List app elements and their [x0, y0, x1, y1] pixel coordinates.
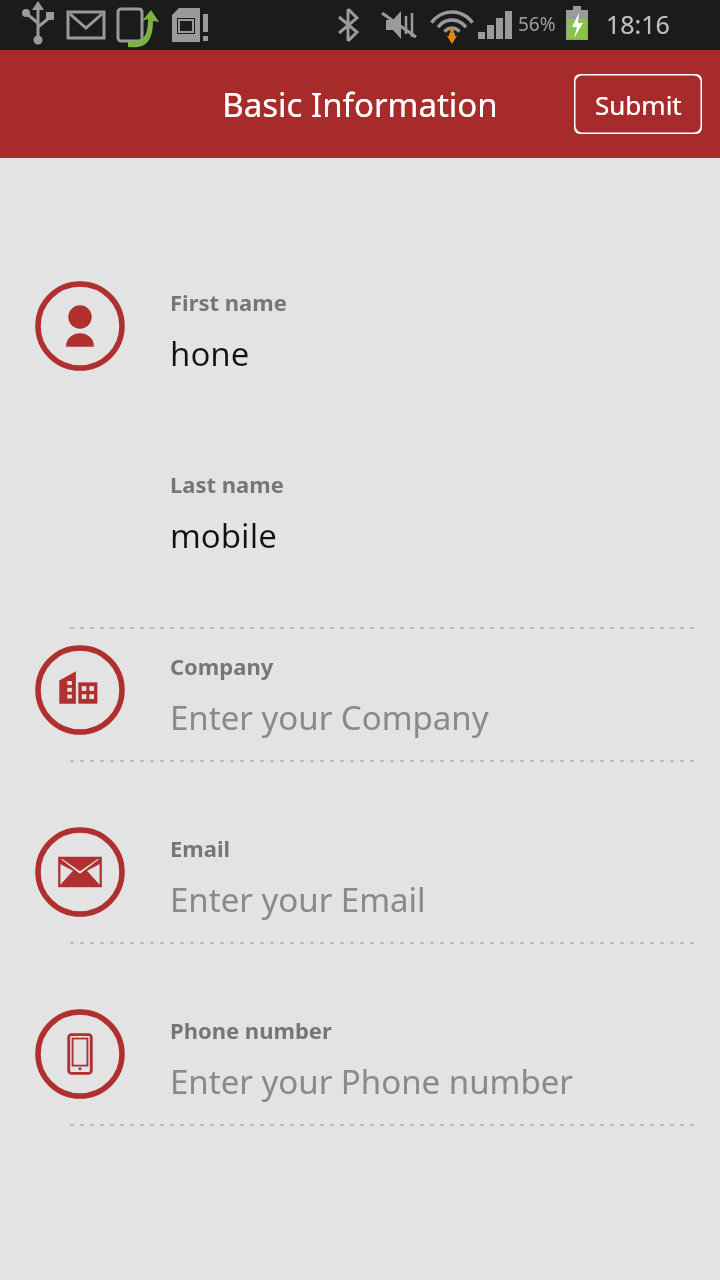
other: Email	[35, 827, 125, 917]
staticText: Basic Information	[222, 82, 498, 127]
staticText: Enter your Phone number	[170, 1059, 573, 1104]
button[interactable]: Phone number	[0, 991, 720, 1173]
staticText: Submit	[595, 87, 682, 122]
other: Phone number	[35, 1009, 125, 1099]
staticText: Enter your Company	[170, 695, 489, 740]
staticText: Email	[170, 833, 231, 863]
button[interactable]: Company	[0, 627, 720, 809]
button[interactable]: Submit	[574, 74, 702, 134]
staticText: Enter your Email	[170, 877, 426, 922]
staticText: Phone number	[170, 1015, 332, 1045]
staticText: Last name	[170, 469, 284, 499]
staticText: 56%	[518, 11, 556, 37]
staticText: Company	[170, 651, 274, 681]
other: Company	[35, 645, 125, 735]
staticText: First name	[170, 287, 287, 317]
staticText: hone	[170, 331, 250, 376]
staticText: 18:16	[606, 7, 670, 41]
other: First name	[35, 281, 125, 371]
button[interactable]: First name	[0, 263, 720, 445]
staticText: mobile	[170, 513, 277, 558]
button[interactable]: Email	[0, 809, 720, 991]
button[interactable]: Last name	[0, 445, 720, 627]
